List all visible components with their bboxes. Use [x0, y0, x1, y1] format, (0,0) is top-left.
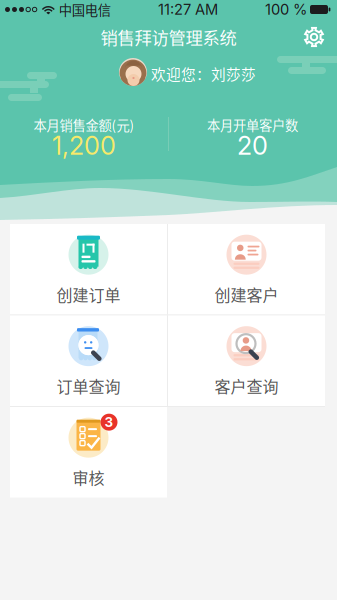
- staticText: 订单查询: [56, 374, 120, 397]
- staticText: 审核: [72, 466, 104, 489]
- staticText: 中国电信: [59, 0, 111, 19]
- button[interactable]: 创建订单: [10, 224, 167, 314]
- button[interactable]: Settings: [296, 19, 337, 55]
- staticText: 1,200: [52, 130, 116, 161]
- staticText: 创建订单: [56, 283, 120, 306]
- staticText: 欢迎您：刘莎莎: [151, 63, 256, 84]
- button[interactable]: 3: [10, 407, 167, 497]
- staticText: 100 %: [265, 1, 307, 18]
- staticText: 本月开单客户数: [207, 115, 298, 134]
- staticText: 本月销售金额(元): [33, 115, 134, 134]
- staticText: 3: [104, 414, 113, 430]
- staticText: 销售拜访管理系统: [100, 24, 236, 50]
- staticText: 客户查询: [214, 374, 278, 397]
- staticText: 创建客户: [214, 283, 278, 306]
- button[interactable]: 创建客户: [168, 224, 325, 314]
- staticText: 20: [237, 130, 268, 161]
- staticText: 11:27 AM: [158, 1, 218, 18]
- button[interactable]: 订单查询: [10, 315, 167, 406]
- button[interactable]: 客户查询: [168, 315, 325, 406]
